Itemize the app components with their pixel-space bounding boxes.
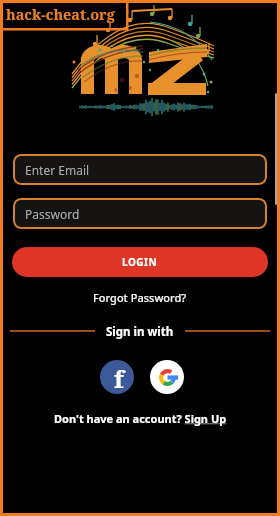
button[interactable]: Password bbox=[13, 198, 267, 229]
button[interactable]: Enter Email bbox=[13, 154, 267, 185]
staticText: Sign in with bbox=[106, 324, 174, 340]
button[interactable]: f bbox=[100, 360, 134, 394]
button[interactable] bbox=[150, 360, 184, 394]
staticText: Password bbox=[25, 206, 80, 222]
button[interactable]: Forgot Password? bbox=[93, 290, 187, 305]
staticText: hack-cheat.org bbox=[6, 4, 115, 24]
staticText: Enter Email bbox=[25, 162, 90, 178]
button[interactable]: LOGIN bbox=[12, 247, 268, 277]
button[interactable]: Don't have an account? Sign Up bbox=[54, 411, 227, 426]
staticText: f bbox=[114, 362, 124, 394]
staticText: LOGIN bbox=[122, 255, 158, 269]
